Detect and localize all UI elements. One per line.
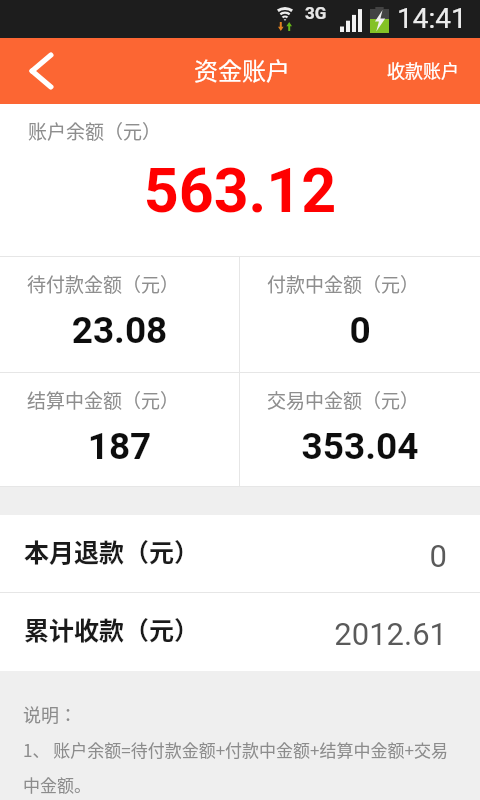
staticText: 2012.61 [0, 616, 447, 652]
staticText: 资金账户 [194, 52, 290, 87]
staticText: 收款账户 [387, 57, 459, 83]
staticText: 0 [240, 309, 480, 352]
button[interactable]: 收款账户 [371, 38, 480, 104]
button[interactable]: 本月退款（元） [0, 515, 480, 592]
staticText: 1、 账户余额=待付款金额+付款中金额+结算中金额+交易中金额。 [23, 737, 453, 797]
staticText: 14:41 [397, 2, 467, 35]
staticText: 账户余额（元） [28, 117, 162, 145]
staticText: 说明： [23, 701, 77, 727]
staticText: 23.08 [0, 309, 239, 352]
staticText: 交易中金额（元） [267, 386, 420, 414]
staticText: 结算中金额（元） [27, 386, 180, 414]
staticText: 本月退款（元） [24, 533, 200, 569]
staticText: 3G [305, 3, 327, 23]
button[interactable]: 交易中金额（元） [240, 373, 480, 486]
button[interactable]: 待付款金额（元） [0, 257, 239, 372]
button[interactable]: 付款中金额（元） [240, 257, 480, 372]
staticText: 0 [0, 538, 447, 574]
staticText: 累计收款（元） [24, 611, 200, 647]
button[interactable]: Back [0, 38, 70, 104]
staticText: 563.12 [0, 155, 480, 226]
button[interactable]: 累计收款（元） [0, 593, 480, 671]
staticText: 付款中金额（元） [267, 270, 420, 298]
button[interactable]: 结算中金额（元） [0, 373, 239, 486]
staticText: 待付款金额（元） [27, 270, 180, 298]
staticText: 187 [0, 425, 239, 468]
staticText: 353.04 [240, 425, 480, 468]
